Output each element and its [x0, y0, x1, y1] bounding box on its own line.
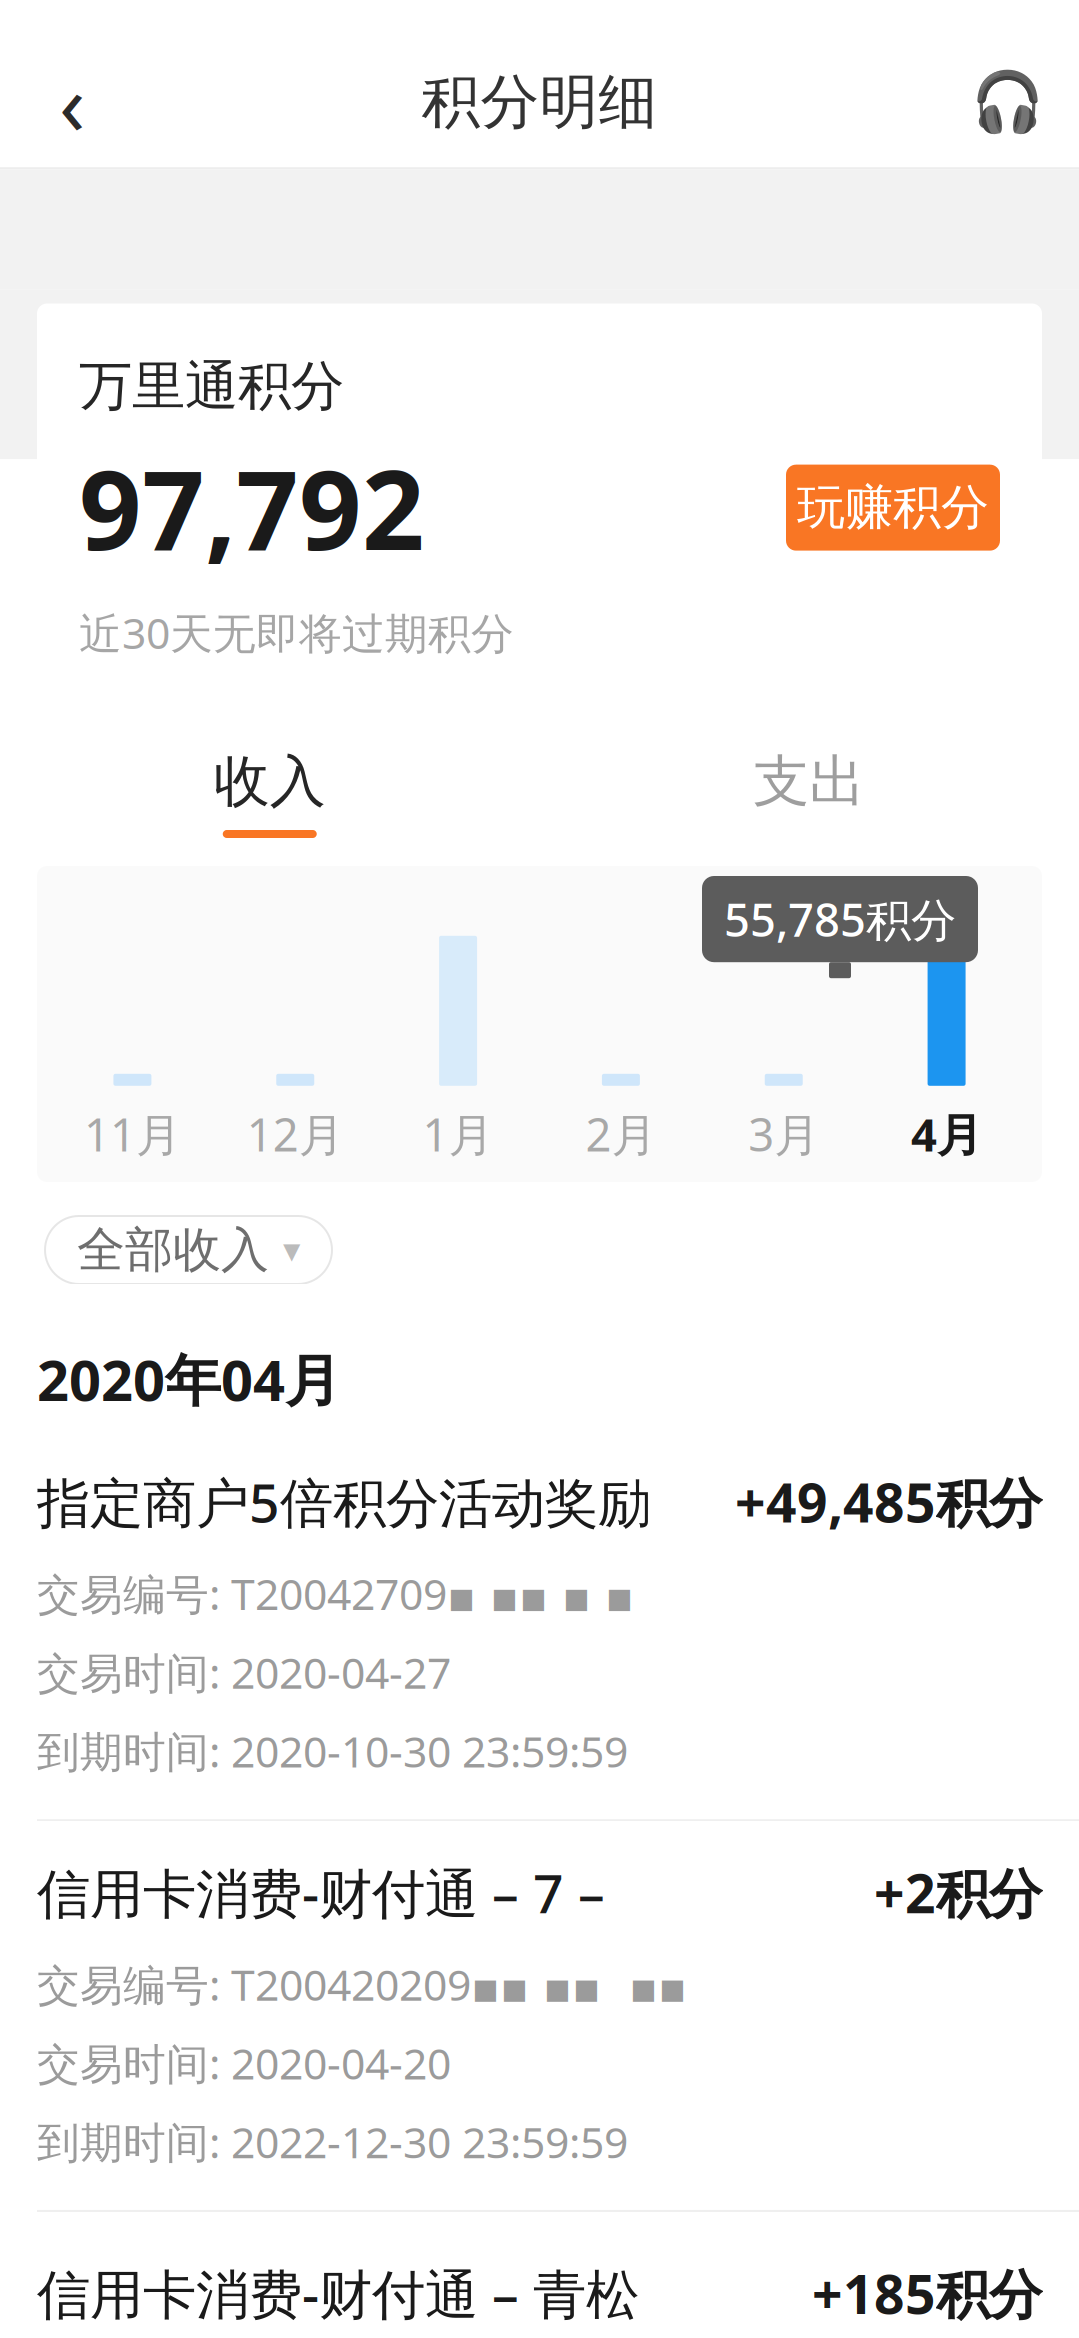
- staticText: ‹: [59, 45, 85, 159]
- staticText: 交易时间: 2020-04-20: [37, 2035, 451, 2091]
- staticText: 近30天无即将过期积分: [79, 604, 514, 661]
- staticText: 万里通积分: [79, 353, 344, 419]
- staticText: 全部收入: [77, 1220, 269, 1279]
- staticText: 55,785积分: [724, 889, 956, 949]
- staticText: +49,485积分: [735, 1466, 1042, 1537]
- button[interactable]: 指定商户5倍积分活动奖励: [0, 1430, 1079, 1819]
- staticText: 指定商户5倍积分活动奖励: [37, 1466, 651, 1537]
- staticText: 12月: [247, 1104, 344, 1164]
- staticText: 到期时间: 2022-12-30 23:59:59: [37, 2113, 628, 2170]
- staticText: 交易编号: T20042709▪ ▪▪ ▪ ▪: [37, 1565, 634, 1622]
- staticText: 🎧: [970, 69, 1043, 136]
- button[interactable]: 信用卡消费-财付通 – 青松: [0, 2212, 1079, 2338]
- staticText: 到期时间: 2020-10-30 23:59:59: [37, 1722, 628, 1779]
- button[interactable]: 支出: [539, 729, 1079, 856]
- button[interactable]: 在线客服: [955, 46, 1059, 158]
- staticText: 积分明细: [421, 66, 657, 138]
- staticText: 信用卡消费-财付通 – 青松: [37, 2258, 639, 2329]
- button[interactable]: 全部收入: [45, 1216, 332, 1284]
- staticText: 2020年04月: [37, 1342, 341, 1416]
- button[interactable]: 返回: [20, 46, 124, 158]
- staticText: 交易时间: 2020-04-27: [37, 1644, 451, 1700]
- button[interactable]: 收入: [0, 729, 539, 856]
- staticText: 1月: [423, 1104, 494, 1164]
- staticText: 11月: [84, 1104, 181, 1164]
- staticText: 信用卡消费-财付通 – 7 –: [37, 1857, 605, 1928]
- button[interactable]: 玩赚积分: [786, 465, 1000, 551]
- staticText: 4月: [911, 1104, 982, 1164]
- button[interactable]: 信用卡消费-财付通 – 7 –: [0, 1821, 1079, 2210]
- staticText: +185积分: [812, 2258, 1042, 2329]
- staticText: 2月: [585, 1104, 656, 1164]
- staticText: 收入: [214, 747, 326, 816]
- staticText: 97,792: [79, 435, 425, 580]
- staticText: ▾: [283, 1230, 300, 1270]
- staticText: 交易编号: T200420209▪▪ ▪▪ ▪▪: [37, 1956, 687, 2013]
- staticText: 3月: [748, 1104, 819, 1164]
- staticText: 玩赚积分: [797, 478, 989, 537]
- staticText: +2积分: [874, 1857, 1042, 1928]
- staticText: 支出: [753, 747, 865, 816]
